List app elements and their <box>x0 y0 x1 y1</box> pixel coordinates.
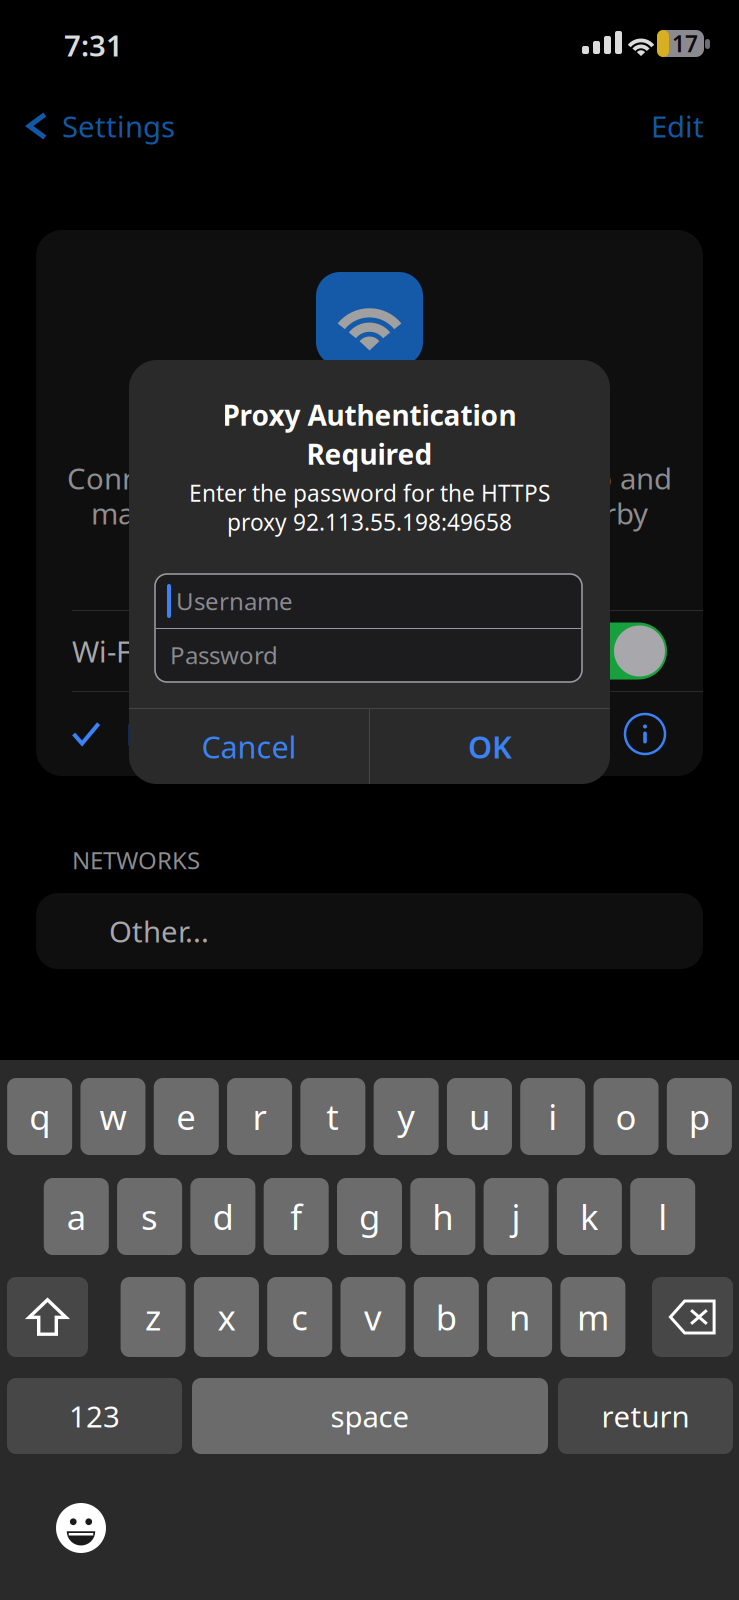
staticText: Wi-Fi <box>72 631 139 670</box>
button[interactable]: z <box>121 1277 186 1357</box>
button[interactable]: Emoji keyboard <box>56 1503 106 1553</box>
button[interactable]: i <box>520 1078 585 1155</box>
staticText: e <box>176 1093 196 1139</box>
staticText: Ra5G <box>126 714 198 753</box>
staticText: o <box>615 1093 636 1139</box>
button[interactable]: return <box>558 1378 733 1454</box>
staticText: y <box>397 1093 415 1139</box>
button[interactable]: l <box>630 1178 695 1255</box>
staticText: j <box>512 1193 521 1239</box>
staticText: Connect to Wi-Fi networks, use AirDrop a… <box>67 458 672 497</box>
staticText: Edit <box>651 106 704 145</box>
staticText: v <box>364 1294 382 1340</box>
staticText: c <box>291 1294 308 1340</box>
staticText: k <box>580 1193 599 1239</box>
button[interactable]: u <box>447 1078 512 1155</box>
button[interactable]: Delete <box>652 1277 733 1357</box>
staticText: proxy 92.113.55.198:49658 <box>227 507 512 537</box>
button[interactable]: o <box>593 1078 658 1155</box>
button[interactable]: Cancel <box>129 709 369 784</box>
button[interactable]: Settings <box>16 98 216 154</box>
button[interactable]: c <box>267 1277 332 1357</box>
staticText: space <box>330 1396 409 1435</box>
staticText: Enter the password for the HTTPS <box>189 478 550 508</box>
button[interactable]: 123 <box>7 1378 182 1454</box>
button[interactable]: h <box>410 1178 475 1255</box>
button[interactable]: Shift <box>7 1277 88 1357</box>
staticText: z <box>145 1294 161 1340</box>
staticText: Password <box>170 639 278 671</box>
button[interactable]: m <box>560 1277 625 1357</box>
staticText: 123 <box>69 1396 120 1435</box>
staticText: Cancel <box>201 726 296 767</box>
button[interactable]: s <box>117 1178 182 1255</box>
button[interactable]: g <box>337 1178 402 1255</box>
staticText: p <box>689 1093 710 1139</box>
staticText: r <box>252 1093 266 1139</box>
staticText: u <box>469 1093 490 1139</box>
button[interactable]: q <box>7 1078 72 1155</box>
button[interactable]: b <box>414 1277 479 1357</box>
staticText: a <box>67 1193 86 1239</box>
staticText: Other... <box>109 911 209 950</box>
staticText: t <box>326 1093 339 1139</box>
button[interactable]: v <box>340 1277 405 1357</box>
staticText: g <box>359 1193 380 1239</box>
staticText: q <box>29 1093 50 1139</box>
staticText: return <box>601 1396 689 1435</box>
button[interactable]: e <box>154 1078 219 1155</box>
button[interactable]: r <box>227 1078 292 1155</box>
staticText: Required <box>306 435 432 473</box>
button[interactable]: j <box>484 1178 549 1255</box>
staticText: OK <box>468 726 512 767</box>
staticText: f <box>290 1193 302 1239</box>
button[interactable]: p <box>667 1078 732 1155</box>
button[interactable]: Other... <box>36 893 703 969</box>
button[interactable]: n <box>487 1277 552 1357</box>
button[interactable]: t <box>300 1078 365 1155</box>
staticText: Proxy Authentication <box>222 396 516 434</box>
button[interactable]: k <box>557 1178 622 1255</box>
staticText: NETWORKS <box>72 844 200 876</box>
staticText: l <box>658 1193 667 1239</box>
button[interactable]: a <box>44 1178 109 1255</box>
button[interactable]: w <box>80 1078 145 1155</box>
button[interactable]: OK <box>370 709 610 784</box>
button[interactable]: x <box>194 1277 259 1357</box>
staticText: 17 <box>672 28 698 58</box>
staticText: Username <box>176 585 293 617</box>
staticText: w <box>99 1093 126 1139</box>
staticText: manage your settings for joining nearby <box>91 493 648 532</box>
staticText: x <box>217 1294 235 1340</box>
staticText: Settings <box>62 106 175 145</box>
staticText: n <box>509 1294 530 1340</box>
button[interactable]: Edit <box>619 98 723 154</box>
button[interactable]: Ra5G <box>36 692 703 776</box>
staticText: h <box>432 1193 453 1239</box>
button[interactable]: y <box>374 1078 439 1155</box>
button[interactable]: f <box>264 1178 329 1255</box>
staticText: s <box>141 1193 158 1239</box>
staticText: b <box>436 1294 457 1340</box>
staticText: i <box>548 1093 557 1139</box>
staticText: m <box>577 1294 609 1340</box>
button[interactable]: space <box>192 1378 548 1454</box>
staticText: 7:31 <box>64 25 123 64</box>
button[interactable]: d <box>190 1178 255 1255</box>
staticText: d <box>212 1193 233 1239</box>
